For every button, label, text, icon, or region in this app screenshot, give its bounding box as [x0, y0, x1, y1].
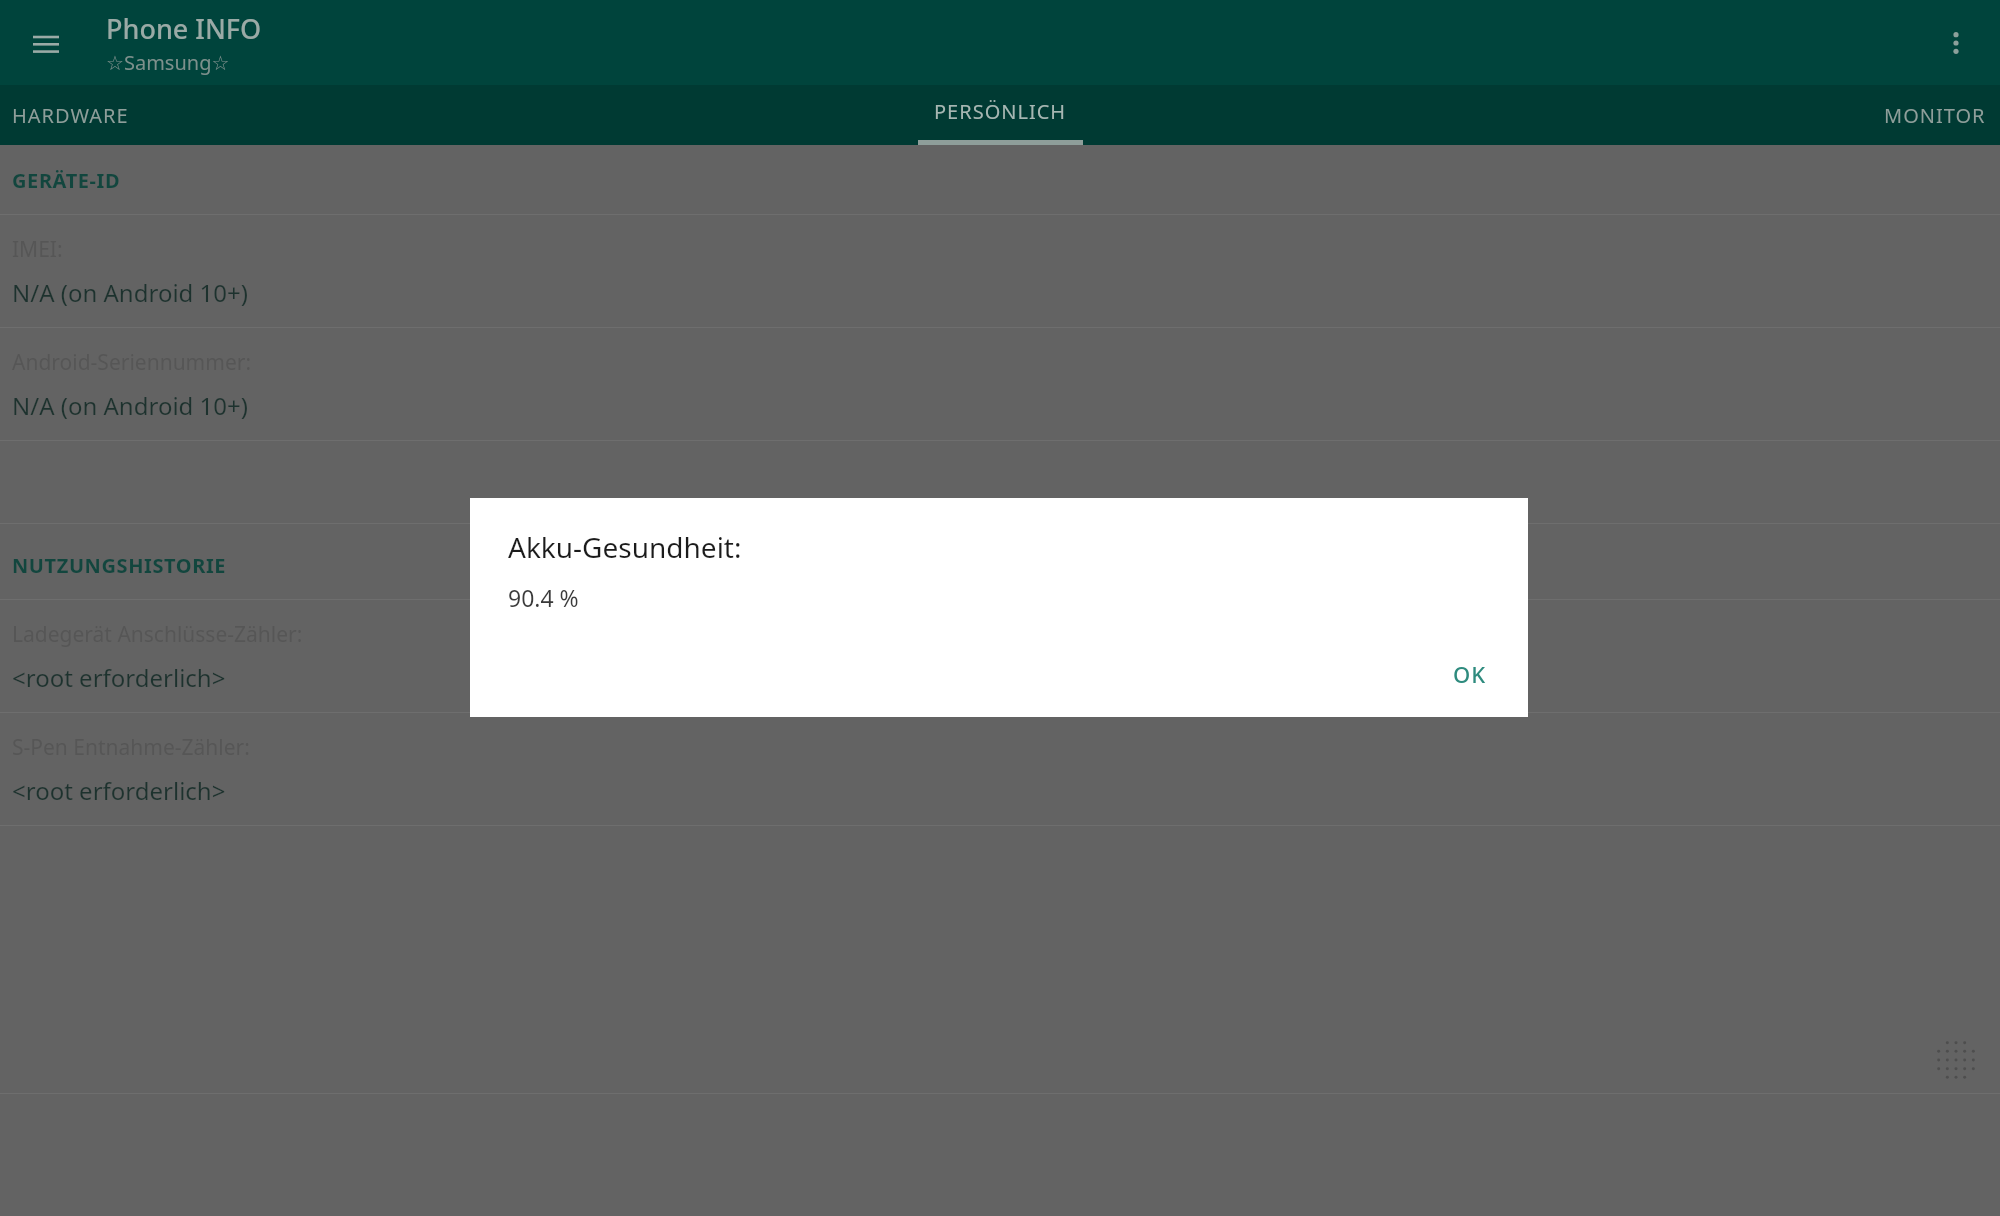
- staticText: NUTZUNGSHISTORIE: [12, 552, 227, 579]
- staticText: Phone INFO: [106, 10, 262, 47]
- button[interactable]: MONITOR: [1840, 85, 2000, 145]
- button[interactable]: Resize handle: [1930, 1034, 1982, 1086]
- staticText: N/A (on Android 10+): [12, 389, 248, 422]
- staticText: 90.4 %: [508, 582, 579, 613]
- staticText: HARDWARE: [12, 102, 129, 129]
- staticText: PERSÖNLICH: [934, 98, 1067, 125]
- staticText: Android-Seriennummer:: [12, 348, 252, 377]
- button[interactable]: HARDWARE: [0, 85, 170, 145]
- button[interactable]: S-Pen Entnahme-Zähler:: [0, 713, 2000, 825]
- staticText: GERÄTE-ID: [12, 167, 121, 194]
- button[interactable]: IMEI:: [0, 215, 2000, 327]
- button[interactable]: PERSÖNLICH: [918, 85, 1083, 145]
- staticText: OK: [1453, 659, 1486, 689]
- button[interactable]: Android-Seriennummer:: [0, 328, 2000, 440]
- staticText: MONITOR: [1884, 102, 1986, 129]
- button[interactable]: GERÄTE-ID: [0, 145, 2000, 214]
- staticText: Akku-Gesundheit:: [508, 528, 742, 566]
- button[interactable]: Navigation menu: [22, 19, 70, 67]
- staticText: Ladegerät Anschlüsse-Zähler:: [12, 620, 303, 649]
- staticText: S-Pen Entnahme-Zähler:: [12, 733, 250, 762]
- staticText: IMEI:: [12, 235, 63, 264]
- staticText: <root erforderlich>: [12, 661, 226, 694]
- staticText: N/A (on Android 10+): [12, 276, 248, 309]
- staticText: <root erforderlich>: [12, 774, 226, 807]
- button[interactable]: OK: [1427, 645, 1512, 703]
- button[interactable]: More options: [1930, 17, 1982, 69]
- staticText: ☆Samsung☆: [106, 49, 230, 76]
- button[interactable]: NUTZUNGSHISTORIE: [0, 524, 2000, 599]
- button[interactable]: Ladegerät Anschlüsse-Zähler:: [0, 600, 2000, 712]
